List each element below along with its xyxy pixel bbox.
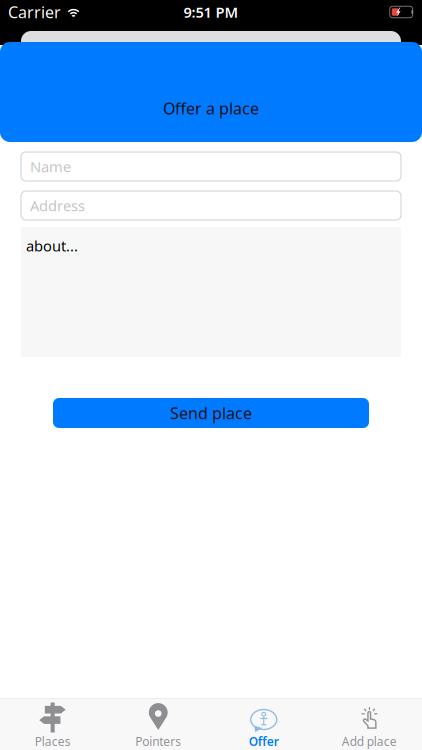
button[interactable]: Address: [21, 191, 401, 220]
staticText: Pointers: [135, 733, 181, 749]
staticText: Add place: [342, 733, 397, 749]
staticText: Offer: [249, 733, 279, 749]
button[interactable]: Offer: [211, 695, 316, 750]
button[interactable]: Pointers: [105, 695, 211, 750]
staticText: Carrier: [8, 1, 61, 23]
button[interactable]: Send place: [53, 398, 369, 428]
staticText: Offer a place: [163, 98, 259, 119]
staticText: Send place: [170, 402, 252, 424]
staticText: 9:51 PM: [183, 2, 238, 22]
staticText: Address: [30, 196, 85, 215]
button[interactable]: Name: [21, 152, 401, 181]
staticText: Name: [30, 157, 71, 176]
staticText: about...: [26, 236, 78, 255]
staticText: Places: [35, 733, 71, 749]
button[interactable]: Places: [0, 695, 105, 750]
button[interactable]: Add place: [316, 695, 422, 750]
